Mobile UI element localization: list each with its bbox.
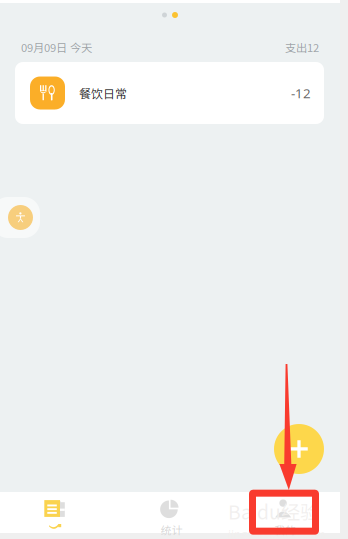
staticText: 统计	[161, 522, 183, 537]
button[interactable]: Add record	[274, 424, 324, 474]
button[interactable]: 餐饮日常	[15, 62, 324, 124]
staticText: -12	[291, 84, 311, 102]
staticText: 我的	[274, 522, 296, 537]
button[interactable]: 记账	[0, 492, 113, 533]
staticText: 09月09日 今天	[21, 39, 92, 55]
staticText: jingyan.baidu.com	[228, 525, 325, 539]
staticText: Baidu经验	[228, 497, 319, 525]
button[interactable]: 统计	[113, 492, 227, 533]
button[interactable]: Accessibility shortcut	[0, 197, 40, 238]
staticText: 餐饮日常	[79, 84, 127, 102]
button[interactable]: 我的	[227, 492, 340, 533]
staticText: 支出12	[285, 39, 319, 55]
